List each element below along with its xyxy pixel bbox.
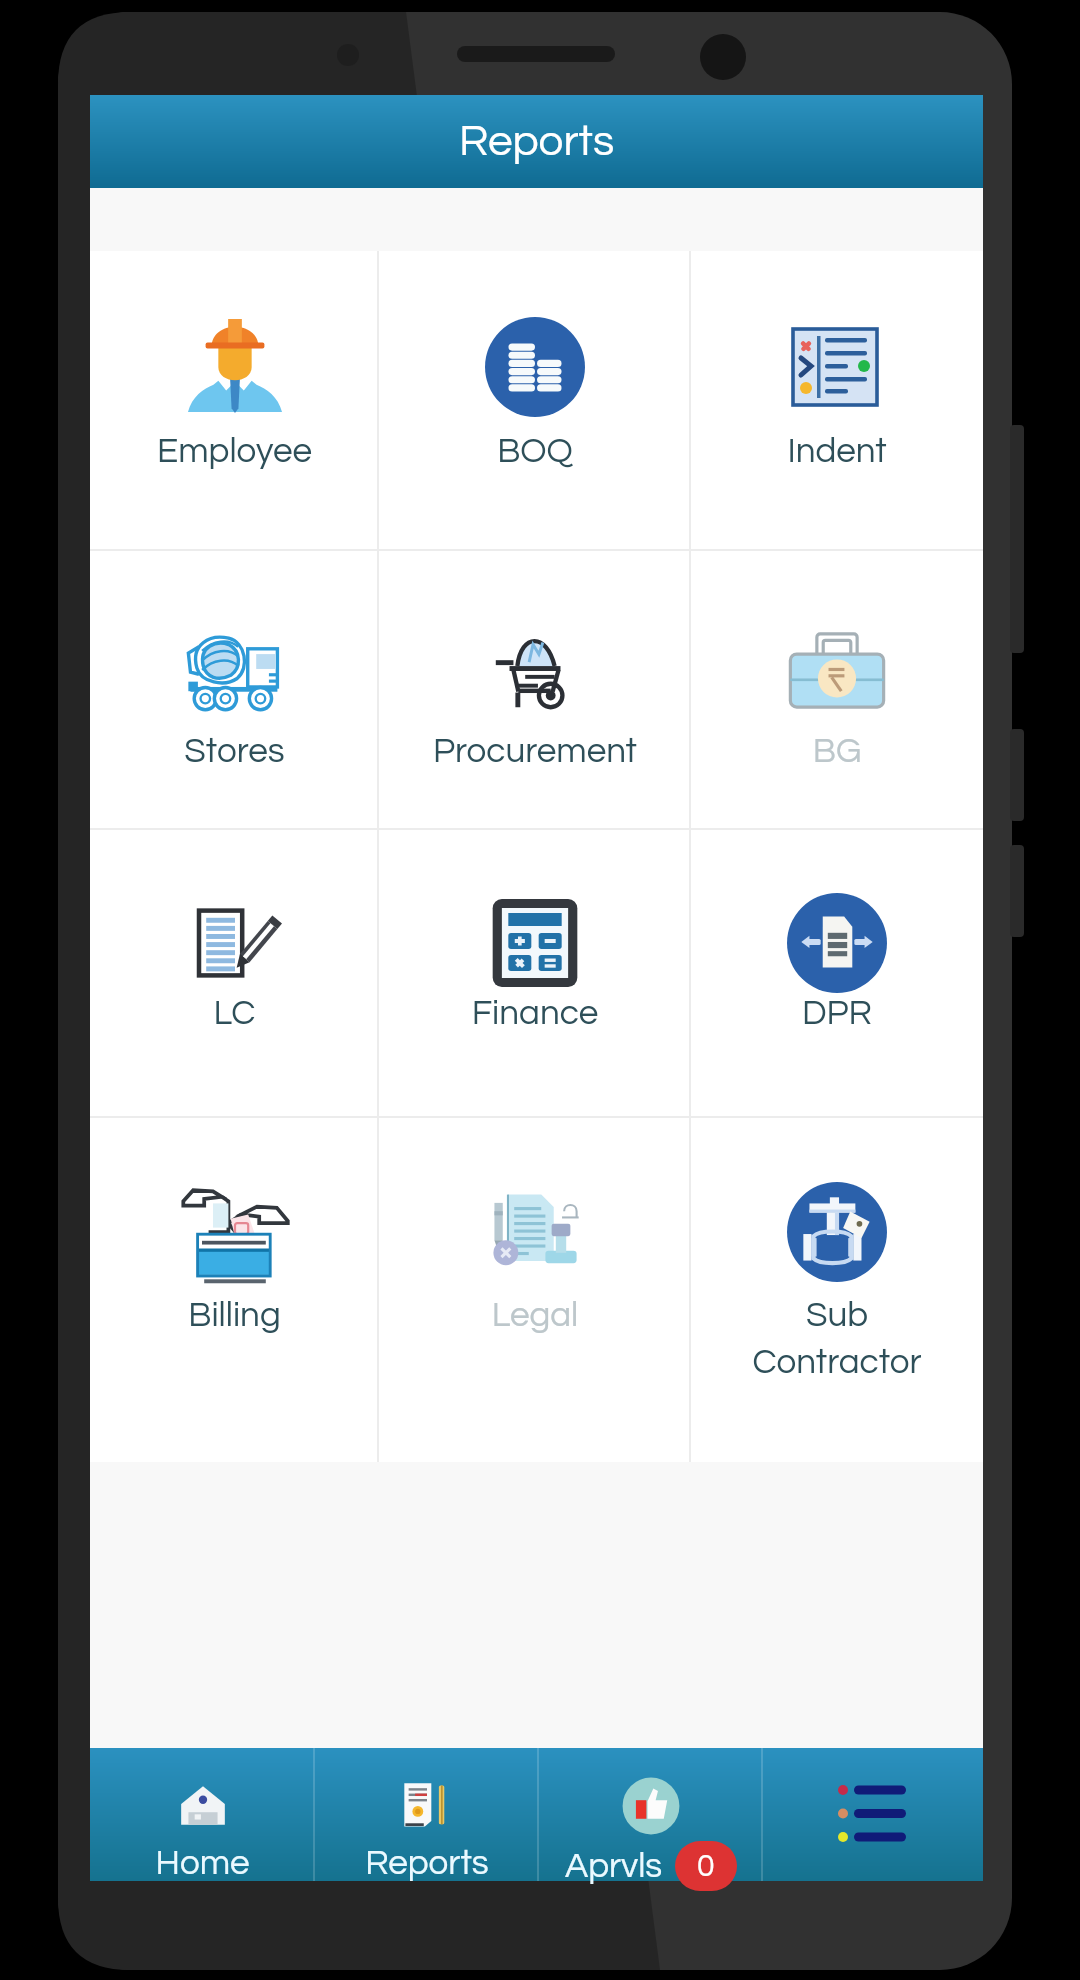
staticText: Indent (691, 433, 983, 469)
staticText: Sub Contractor (691, 1297, 983, 1381)
button[interactable]: Finance (379, 830, 691, 1116)
button[interactable]: Home (90, 1748, 315, 1881)
button[interactable]: Legal (379, 1118, 691, 1462)
button[interactable]: Employee (90, 251, 379, 549)
staticText: Reports (459, 119, 615, 164)
staticText: Stores (90, 733, 379, 769)
button[interactable]: BG (691, 551, 983, 828)
button[interactable]: Sub Contractor (691, 1118, 983, 1462)
button[interactable]: Billing (90, 1118, 379, 1462)
staticText: LC (90, 995, 379, 1031)
staticText: Legal (379, 1297, 691, 1333)
staticText: Employee (90, 433, 379, 469)
staticText: Reports (315, 1845, 539, 1881)
button[interactable]: DPR (691, 830, 983, 1116)
staticText: Procurement (379, 733, 691, 769)
staticText: Billing (90, 1297, 379, 1333)
staticText: 0 (697, 1850, 715, 1883)
button[interactable]: BOQ (379, 251, 691, 549)
button[interactable]: Indent (691, 251, 983, 549)
staticText: Home (90, 1845, 315, 1881)
button[interactable]: More menu (763, 1748, 983, 1881)
staticText: BG (691, 733, 983, 769)
button[interactable]: Reports (315, 1748, 539, 1881)
staticText: BOQ (379, 433, 691, 469)
staticText: Finance (379, 995, 691, 1031)
button[interactable]: LC (90, 830, 379, 1116)
staticText: DPR (691, 995, 983, 1031)
staticText: Aprvls (565, 1848, 663, 1884)
button[interactable]: Procurement (379, 551, 691, 828)
button[interactable]: Stores (90, 551, 379, 828)
button[interactable]: Aprvls (539, 1748, 763, 1881)
